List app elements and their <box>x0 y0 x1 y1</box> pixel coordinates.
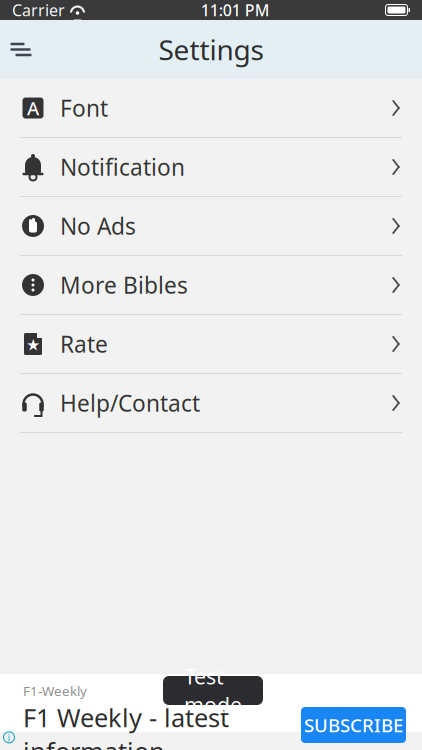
staticText: A <box>27 96 39 120</box>
staticText: 11:01 PM <box>201 0 270 21</box>
staticText: F1 Weekly - latest information <box>23 701 229 750</box>
button[interactable]: ★ <box>0 315 422 374</box>
staticText: ★ <box>26 336 40 354</box>
button[interactable]: SUBSCRIBE <box>301 707 406 743</box>
button[interactable]: Help/Contact <box>0 374 422 433</box>
staticText: More Bibles <box>60 270 188 300</box>
staticText: Carrier <box>12 0 65 21</box>
button[interactable]: No Ads <box>0 197 422 256</box>
button[interactable]: More Bibles <box>0 256 422 315</box>
button[interactable]: Ad information <box>3 732 14 743</box>
staticText: Help/Contact <box>60 388 200 418</box>
staticText: Settings <box>158 31 263 68</box>
button[interactable]: Menu <box>0 24 46 74</box>
staticText: F1-Weekly <box>23 682 87 700</box>
staticText: Font <box>60 93 108 123</box>
button[interactable]: A <box>0 79 422 138</box>
staticText: Test mode <box>184 662 242 719</box>
staticText: Notification <box>60 152 185 182</box>
staticText: i <box>7 730 10 744</box>
staticText: SUBSCRIBE <box>304 713 403 737</box>
button[interactable]: Notification <box>0 138 422 197</box>
staticText: No Ads <box>60 211 136 241</box>
staticText: Rate <box>60 329 108 359</box>
